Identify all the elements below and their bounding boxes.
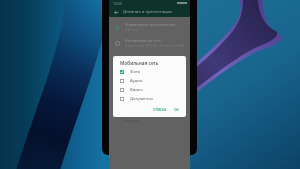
button[interactable]: Управление презентацией <box>115 19 187 35</box>
staticText: Документы <box>130 96 154 102</box>
button[interactable]: Видео <box>120 85 186 94</box>
staticText: Сохранить <box>122 118 140 123</box>
staticText: Управление презентацией <box>125 22 176 27</box>
staticText: 14:09 <box>113 1 122 6</box>
staticText: Аудио <box>130 78 143 84</box>
staticText: Дневник и презентации <box>123 9 172 15</box>
staticText: Беспроводная сеть <box>125 38 162 43</box>
button[interactable]: Документы <box>120 94 186 103</box>
button[interactable]: Back <box>109 7 123 17</box>
staticText: Фото <box>130 69 141 75</box>
staticText: Подключено: MTS-HD Частота: 5G LINK <box>125 44 185 48</box>
button[interactable]: Аудио <box>120 76 186 85</box>
button[interactable]: ОТМЕНА <box>152 108 168 112</box>
staticText: ОТМЕНА <box>153 108 167 112</box>
button[interactable]: Беспроводная сеть <box>115 35 187 51</box>
staticText: Мобильная сеть <box>120 60 159 67</box>
button[interactable]: ОК <box>173 107 180 112</box>
staticText: Видео <box>130 87 143 93</box>
staticText: ОК <box>174 107 179 112</box>
staticText: HTC Link <box>125 28 138 32</box>
button[interactable]: Фото <box>120 67 186 76</box>
